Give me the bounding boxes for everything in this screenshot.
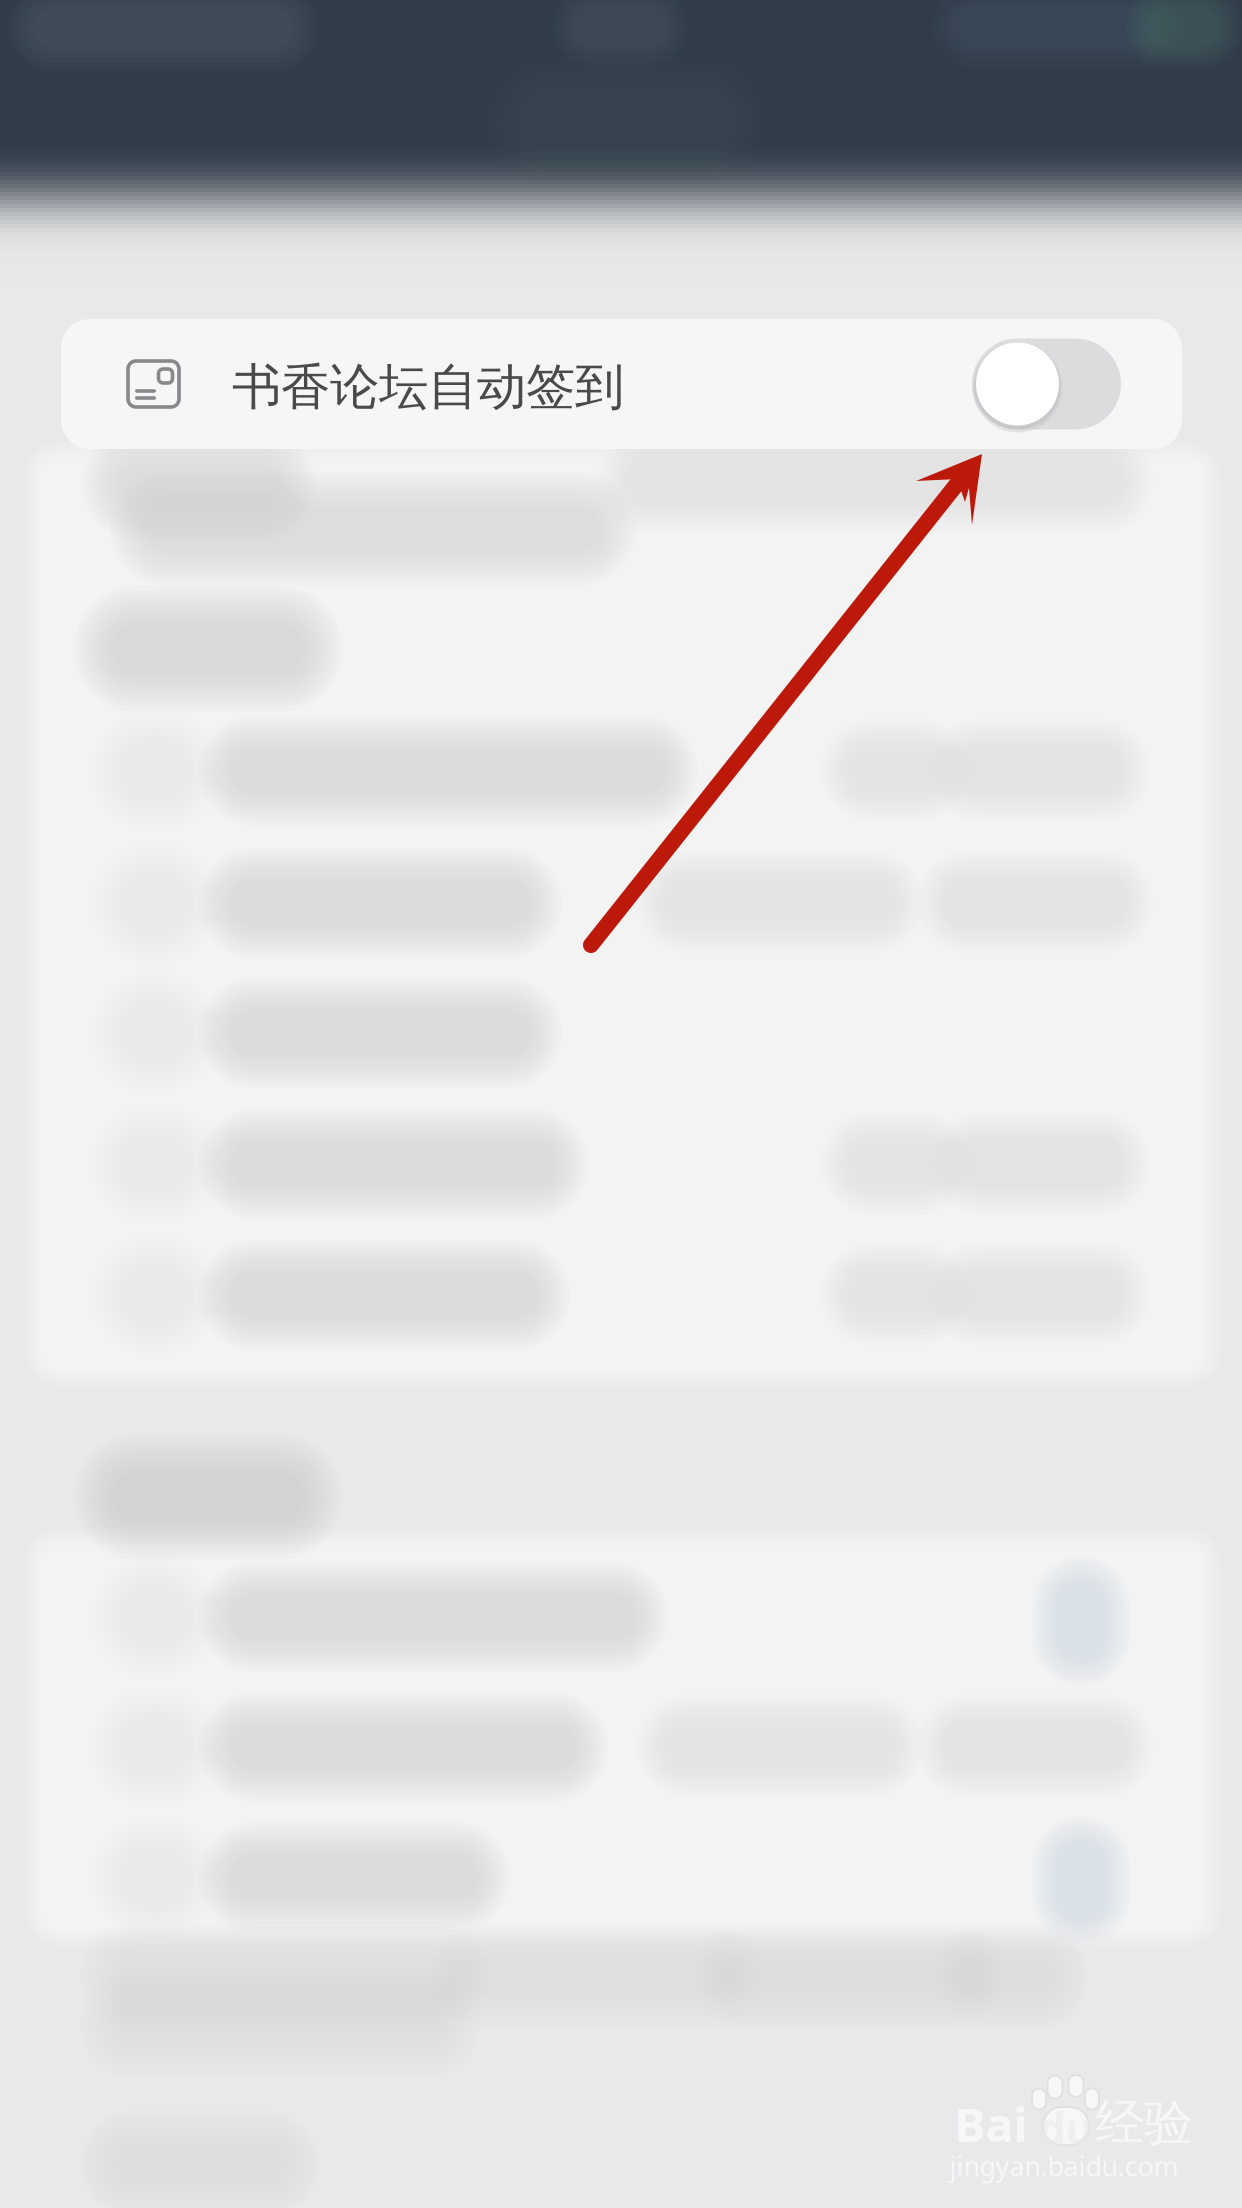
- staticText: Bai: [954, 2093, 1027, 2155]
- staticText: du: [1038, 2100, 1093, 2156]
- button[interactable]: 书香论坛自动签到: [61, 319, 1182, 449]
- staticText: 书香论坛自动签到: [232, 357, 624, 417]
- staticText: jingyan.baidu.com: [949, 2148, 1178, 2184]
- staticText: 经验: [1095, 2093, 1193, 2153]
